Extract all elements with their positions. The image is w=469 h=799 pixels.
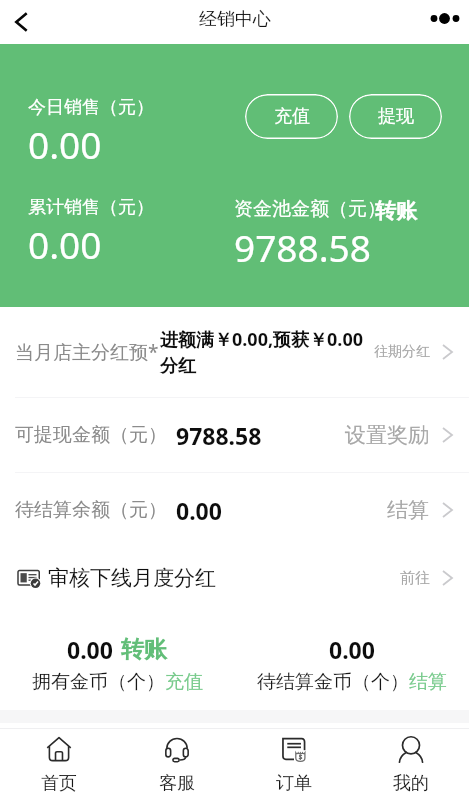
staticText: 提现 (378, 105, 414, 128)
button[interactable]: 0.00 (0, 618, 234, 710)
button[interactable]: 审核下线月度分红 (0, 547, 469, 609)
staticText: 设置奖励 (345, 422, 429, 448)
staticText: 前往 (400, 569, 430, 588)
button[interactable]: 客服 (118, 729, 235, 799)
staticText: 待结算金币（个） (257, 670, 409, 694)
staticText: 往期分红 (374, 343, 430, 361)
staticText: 资金池金额（元） (234, 197, 386, 221)
button[interactable]: 转账 (375, 198, 417, 224)
staticText: 拥有金币（个） (32, 670, 165, 694)
button[interactable]: 待结算余额（元） (0, 473, 469, 547)
staticText: 结算 (387, 497, 429, 523)
staticText: 9788.58 (176, 420, 262, 451)
staticText: 0.00 (329, 634, 375, 665)
button[interactable]: 0.00 (234, 618, 469, 710)
staticText: 累计销售（元） (28, 196, 154, 219)
staticText: 0.00 (67, 634, 113, 665)
staticText: 当月店主分红预* (15, 339, 159, 365)
staticText: 今日销售（元） (28, 96, 154, 119)
button[interactable]: 提现 (349, 94, 442, 139)
staticText: 可提现金额（元） (15, 423, 167, 447)
button[interactable]: 首页 (0, 729, 118, 799)
button[interactable]: 订单 (235, 729, 352, 799)
button[interactable]: Back (0, 0, 42, 44)
staticText: 充值 (165, 670, 203, 694)
staticText: 进额满￥0.00,预获￥0.00分红 (160, 327, 371, 377)
staticText: 0.00 (28, 119, 102, 169)
staticText: 结算 (409, 670, 447, 694)
button[interactable]: 我的 (352, 729, 469, 799)
staticText: 我的 (393, 772, 429, 795)
button[interactable]: 充值 (245, 94, 338, 139)
button[interactable]: More options (423, 0, 469, 44)
staticText: 转账 (121, 635, 167, 664)
staticText: 9788.58 (234, 222, 371, 272)
staticText: 0.00 (28, 219, 102, 269)
staticText: 经销中心 (199, 8, 271, 31)
button[interactable]: 可提现金额（元） (0, 398, 469, 472)
staticText: 首页 (41, 772, 77, 795)
button[interactable]: 当月店主分红预* (0, 307, 469, 397)
staticText: 转账 (375, 198, 417, 224)
staticText: 0.00 (176, 495, 222, 526)
staticText: 客服 (159, 772, 195, 795)
staticText: 订单 (276, 772, 312, 795)
staticText: 充值 (274, 105, 310, 128)
staticText: 审核下线月度分红 (48, 565, 216, 591)
staticText: 待结算余额（元） (15, 498, 167, 522)
